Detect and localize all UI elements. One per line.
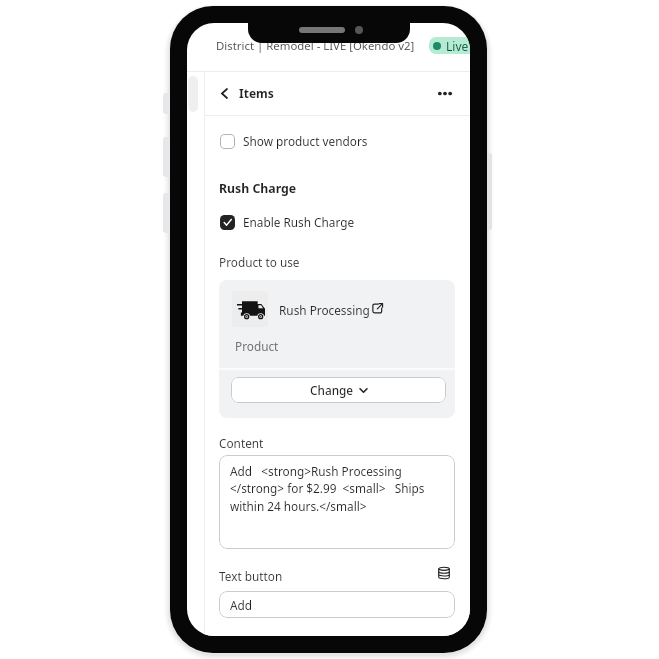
staticText: Rush Processing bbox=[279, 302, 370, 318]
staticText: Add bbox=[230, 597, 253, 613]
button[interactable]: Add <strong>Rush Processing </strong> fo… bbox=[219, 455, 455, 549]
button[interactable]: Change bbox=[231, 377, 446, 403]
staticText: Change bbox=[310, 382, 354, 398]
button[interactable]: Enable Rush Charge bbox=[220, 214, 355, 230]
staticText: Text button bbox=[219, 568, 283, 584]
staticText: District | Remodel - LIVE [Okendo v2] bbox=[216, 38, 415, 54]
staticText: Items bbox=[239, 85, 274, 101]
staticText: Rush Charge bbox=[219, 180, 297, 197]
staticText: Show product vendors bbox=[243, 133, 368, 149]
button[interactable]: More options bbox=[433, 81, 457, 105]
staticText: Product to use bbox=[219, 254, 300, 270]
button[interactable]: Show product vendors bbox=[220, 133, 368, 149]
button[interactable]: Add bbox=[219, 591, 455, 618]
staticText: Product bbox=[235, 338, 279, 354]
button[interactable]: Data source bbox=[435, 564, 453, 582]
button[interactable]: Live bbox=[429, 37, 470, 54]
staticText: Add <strong>Rush Processing </strong> fo… bbox=[230, 463, 425, 515]
staticText: Content bbox=[219, 435, 264, 451]
button[interactable]: Back bbox=[213, 82, 235, 104]
staticText: Enable Rush Charge bbox=[243, 214, 355, 230]
staticText: Live bbox=[446, 38, 469, 54]
